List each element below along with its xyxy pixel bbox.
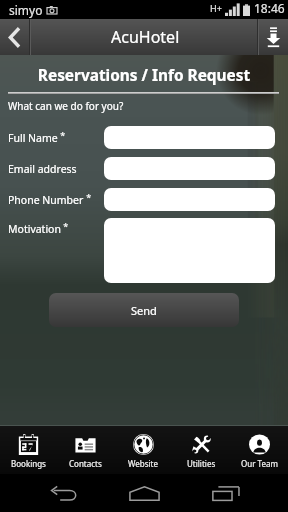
button[interactable]	[104, 188, 275, 211]
button[interactable]: Back	[38, 474, 90, 512]
button[interactable]: Back	[0, 19, 29, 55]
staticText: What can we do for you?	[8, 99, 124, 113]
button[interactable]: Bookings	[0, 426, 57, 474]
button[interactable]: Recent apps	[200, 474, 252, 512]
button[interactable]	[104, 218, 275, 283]
button[interactable]: Website	[114, 426, 172, 474]
staticText: Website	[128, 458, 159, 469]
staticText: Full Name	[8, 131, 58, 145]
button[interactable]: Send	[49, 293, 239, 327]
staticText: *	[61, 220, 69, 232]
staticText: Contacts	[69, 458, 102, 469]
button[interactable]	[104, 126, 275, 149]
button[interactable]: Contacts	[57, 426, 114, 474]
staticText: Email address	[8, 162, 77, 176]
staticText: AcuHotel	[111, 26, 180, 48]
staticText: Bookings	[11, 458, 46, 469]
staticText: Reservations / Info Request	[0, 65, 288, 86]
button[interactable]	[104, 157, 275, 180]
button[interactable]: Utilities	[172, 426, 230, 474]
staticText: 18:46	[254, 0, 285, 16]
staticText: Motivation	[8, 222, 61, 236]
button[interactable]: Our Team	[230, 426, 288, 474]
staticText: Our Team	[241, 458, 278, 469]
staticText: *	[84, 191, 92, 203]
staticText: *	[58, 129, 66, 141]
button[interactable]: Download	[259, 19, 288, 55]
staticText: Phone Number	[8, 193, 84, 207]
staticText: simyo	[9, 2, 43, 18]
button[interactable]: Home	[118, 474, 170, 512]
staticText: H+	[210, 2, 222, 14]
staticText: Utilities	[187, 458, 216, 469]
staticText: Send	[131, 303, 157, 318]
